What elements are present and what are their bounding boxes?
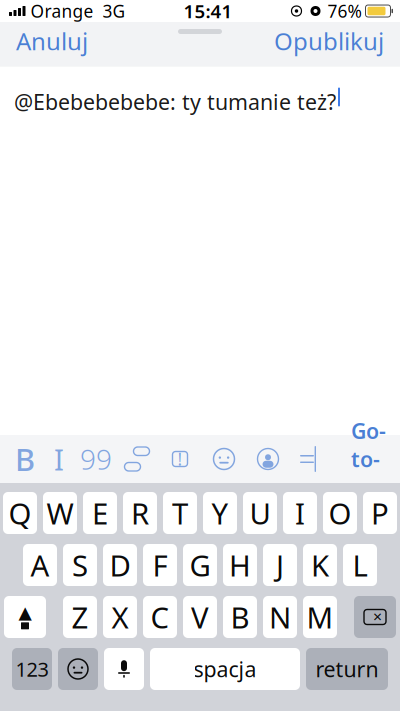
button[interactable]: C — [143, 596, 177, 638]
staticText: Q — [8, 493, 31, 532]
button[interactable]: Anuluj — [0, 19, 104, 63]
button[interactable]: Emoji — [202, 436, 246, 482]
staticText: F — [152, 545, 167, 584]
staticText: N — [269, 597, 291, 636]
button[interactable]: L — [343, 544, 377, 586]
staticText: K — [311, 545, 329, 584]
button[interactable]: W — [43, 492, 77, 534]
staticText: I — [295, 493, 305, 532]
button[interactable]: B — [223, 596, 257, 638]
staticText: D — [109, 545, 130, 584]
staticText: ▲ — [18, 603, 31, 622]
button[interactable]: Opublikuj — [258, 19, 400, 63]
button[interactable]: Mention user — [246, 436, 290, 482]
staticText: return — [315, 655, 378, 683]
button[interactable]: Strikethrough — [290, 436, 324, 482]
staticText: 99 — [80, 440, 112, 478]
button[interactable]: Shift — [4, 596, 46, 638]
button[interactable]: Italic — [42, 436, 76, 482]
button[interactable]: H — [223, 544, 257, 586]
button[interactable]: S — [63, 544, 97, 586]
staticText: B — [230, 597, 249, 636]
staticText: spacja — [193, 655, 256, 683]
button[interactable]: F — [143, 544, 177, 586]
staticText: @Ebebebebebe: ty tumanie też? — [14, 87, 336, 116]
button[interactable]: Q — [3, 492, 37, 534]
staticText: X — [111, 597, 128, 636]
button[interactable]: A — [23, 544, 57, 586]
button[interactable]: 123 — [12, 648, 52, 690]
staticText: M — [306, 597, 333, 636]
staticText: Gotowe — [351, 416, 386, 501]
staticText: R — [131, 493, 149, 532]
staticText: Orange — [30, 0, 93, 22]
button[interactable]: G — [183, 544, 217, 586]
button[interactable]: Y — [203, 492, 237, 534]
staticText: C — [150, 597, 169, 636]
button[interactable]: I — [283, 492, 317, 534]
staticText: S — [72, 545, 88, 584]
button[interactable]: M — [303, 596, 337, 638]
button[interactable]: Z — [63, 596, 97, 638]
button[interactable]: U — [243, 492, 277, 534]
button[interactable]: Gotowe — [337, 436, 400, 482]
staticText: 3G — [102, 0, 125, 22]
staticText: H — [229, 545, 251, 584]
staticText: 76% — [327, 0, 361, 22]
staticText: 123 — [15, 656, 48, 682]
staticText: G — [189, 545, 210, 584]
button[interactable]: Link — [116, 436, 158, 482]
button[interactable]: N — [263, 596, 297, 638]
staticText: I — [54, 439, 64, 478]
button[interactable]: J — [263, 544, 297, 586]
button[interactable]: Emoji keyboard — [58, 648, 98, 690]
button[interactable]: Quote — [76, 436, 116, 482]
staticText: ✕ — [372, 610, 382, 624]
button[interactable]: Delete — [354, 596, 396, 638]
button[interactable]: X — [103, 596, 137, 638]
button[interactable]: V — [183, 596, 217, 638]
button[interactable]: return — [306, 648, 388, 690]
staticText: Anuluj — [16, 25, 88, 57]
button[interactable]: Spoiler — [158, 436, 202, 482]
button[interactable]: R — [123, 492, 157, 534]
staticText: A — [30, 545, 49, 584]
staticText: ! — [177, 447, 182, 470]
button[interactable]: P — [363, 492, 397, 534]
staticText: O — [328, 493, 351, 532]
button[interactable]: T — [163, 492, 197, 534]
staticText: P — [371, 493, 389, 532]
button[interactable]: Bold — [8, 436, 42, 482]
staticText: B — [15, 439, 35, 479]
staticText: Z — [71, 597, 88, 636]
staticText: U — [249, 493, 270, 532]
button[interactable]: spacja — [150, 648, 300, 690]
staticText: T — [172, 493, 188, 532]
button[interactable]: D — [103, 544, 137, 586]
staticText: J — [276, 545, 284, 584]
staticText: W — [46, 493, 73, 532]
button[interactable]: Dictate — [104, 648, 144, 690]
button[interactable]: K — [303, 544, 337, 586]
staticText: L — [352, 545, 367, 584]
button[interactable]: O — [323, 492, 357, 534]
staticText: 15:41 — [183, 0, 232, 23]
button[interactable]: E — [83, 492, 117, 534]
staticText: E — [92, 493, 108, 532]
staticText: Y — [211, 493, 228, 532]
staticText: Opublikuj — [274, 25, 384, 57]
staticText: V — [191, 597, 209, 636]
